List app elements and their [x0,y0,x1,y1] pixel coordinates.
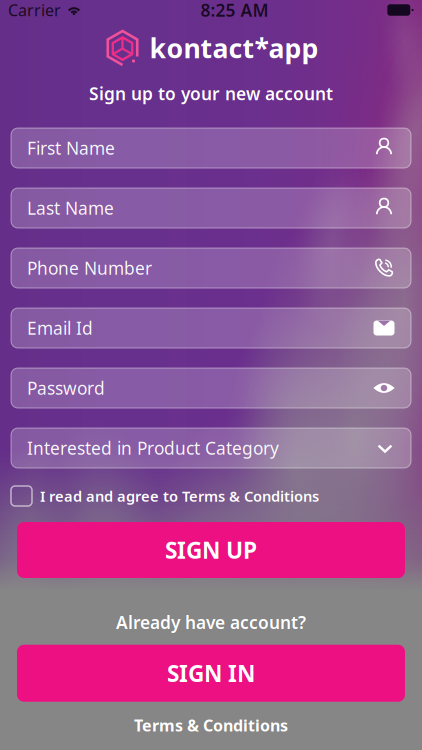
staticText: Phone Number [27,256,152,279]
staticText: SIGN IN [167,658,255,688]
button[interactable]: Last Name [11,188,411,228]
staticText: Password [27,376,105,399]
staticText: 8:25 AM [200,0,268,21]
staticText: First Name [27,136,115,159]
button[interactable]: Phone Number [11,248,411,288]
staticText: I read and agree to Terms & Conditions [40,486,319,506]
staticText: Interested in Product Category [27,436,279,459]
staticText: Terms & Conditions [134,715,288,736]
staticText: kontact*app [149,30,318,66]
button[interactable]: Terms & Conditions [134,715,288,736]
staticText: Email Id [27,316,93,339]
button[interactable]: Email Id [11,308,411,348]
button[interactable]: First Name [11,128,411,168]
button[interactable]: Password [11,368,411,408]
staticText: Sign up to your new account [89,82,333,105]
button[interactable]: Interested in Product Category [11,428,411,468]
staticText: Already have account? [116,611,306,634]
staticText: Last Name [27,196,114,219]
button[interactable]: SIGN UP [17,522,405,578]
button[interactable]: SIGN IN [17,645,405,702]
staticText: SIGN UP [165,535,257,565]
button[interactable]: I read and agree to Terms & Conditions [11,485,411,507]
staticText: Carrier [8,0,61,21]
